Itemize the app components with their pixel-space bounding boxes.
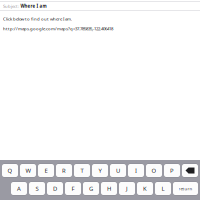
button[interactable]: W (20, 163, 36, 177)
staticText: P (170, 166, 174, 174)
staticText: K (143, 184, 147, 192)
staticText: R (62, 166, 66, 174)
staticText: return (178, 186, 192, 191)
button[interactable]: O (146, 163, 162, 177)
staticText: Subject: (3, 3, 19, 9)
staticText: A (17, 184, 21, 192)
button[interactable]: http://maps.google.com/maps?q=37.785835,… (3, 26, 113, 31)
staticText: G (89, 184, 93, 192)
staticText: I (135, 166, 137, 174)
staticText: T (80, 166, 83, 174)
staticText: Y (98, 166, 101, 174)
staticText: O (151, 166, 156, 174)
button[interactable]: G (83, 181, 99, 195)
button[interactable]: U (110, 163, 126, 177)
button[interactable]: Y (92, 163, 108, 177)
button[interactable]: return (173, 181, 198, 195)
staticText: D (53, 184, 57, 192)
button[interactable]: K (137, 181, 153, 195)
button[interactable]: T (74, 163, 90, 177)
button[interactable]: S (29, 181, 45, 195)
button[interactable]: Q (2, 163, 18, 177)
button[interactable]: D (47, 181, 63, 195)
staticText: H (107, 184, 111, 192)
staticText: Click below to find out where I am. (3, 16, 72, 22)
button[interactable]: P (164, 163, 180, 177)
button[interactable]: I (128, 163, 144, 177)
staticText: J (126, 184, 128, 192)
staticText: Q (7, 166, 12, 174)
button[interactable]: Delete (182, 163, 198, 177)
staticText: S (35, 184, 38, 192)
button[interactable]: L (155, 181, 171, 195)
button[interactable]: E (38, 163, 54, 177)
button[interactable]: H (101, 181, 117, 195)
staticText: U (116, 166, 120, 174)
button[interactable]: F (65, 181, 81, 195)
button[interactable]: A (11, 181, 27, 195)
button[interactable]: J (119, 181, 135, 195)
staticText: http://maps.google.com/maps?q=37.785835,… (3, 26, 113, 31)
staticText: W (25, 166, 30, 174)
staticText: L (161, 184, 164, 192)
button[interactable]: R (56, 163, 72, 177)
staticText: E (44, 166, 47, 174)
button[interactable]: Subject: (0, 2, 200, 10)
staticText: F (71, 184, 74, 192)
staticText: Where I am (20, 3, 46, 9)
